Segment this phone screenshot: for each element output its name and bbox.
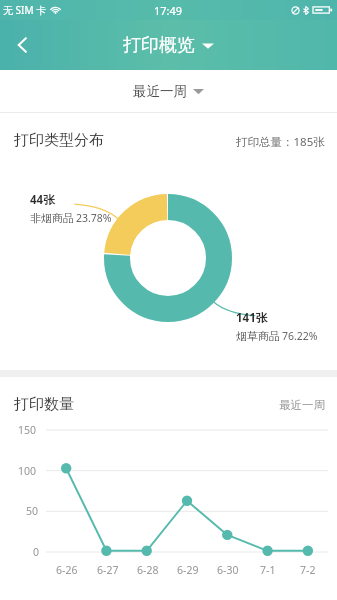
staticText: 44张 [30, 192, 55, 208]
staticText: 非烟商品 [30, 211, 74, 225]
button[interactable]: 最近一周 [125, 78, 212, 105]
staticText: 7-2 [300, 563, 316, 577]
staticText: 0 [33, 545, 40, 559]
staticText: 6-29 [177, 563, 199, 577]
staticText: 100 [18, 464, 37, 478]
button[interactable]: 打印概览 [117, 28, 220, 63]
staticText: 打印总量：185张 [236, 134, 325, 150]
staticText: 6-30 [217, 563, 239, 577]
staticText: 6-26 [56, 563, 78, 577]
staticText: 打印概览 [123, 34, 195, 57]
staticText: 150 [18, 423, 37, 437]
staticText: 76.22% [282, 329, 318, 343]
staticText: 打印类型分布 [14, 131, 104, 150]
staticText: 6-28 [137, 563, 159, 577]
button[interactable]: 最近一周 [279, 398, 325, 412]
staticText: 最近一周 [133, 83, 187, 100]
staticText: 141张 [236, 310, 268, 326]
staticText: 烟草商品 [236, 329, 280, 343]
button[interactable]: Back [0, 20, 46, 70]
staticText: 6-27 [97, 563, 119, 577]
staticText: 17:49 [154, 3, 183, 18]
staticText: 7-1 [260, 563, 276, 577]
staticText: 打印数量 [14, 395, 74, 414]
staticText: 23.78% [76, 211, 112, 225]
staticText: 50 [26, 504, 39, 518]
staticText: 无 SIM 卡 [3, 3, 47, 17]
